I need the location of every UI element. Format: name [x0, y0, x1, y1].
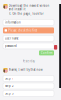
staticText: Yesterday: [22, 59, 34, 63]
button[interactable]: password: [3, 43, 54, 49]
button[interactable]: information: [3, 19, 54, 25]
button[interactable]: Step 1: [3, 75, 54, 81]
staticText: Confirm: [41, 51, 52, 55]
button[interactable]: Delete: [54, 45, 57, 50]
button[interactable]: user name: [3, 35, 54, 41]
staticText: information: [5, 21, 21, 24]
staticText: it. On the page, look for: [8, 12, 43, 15]
staticText: Thanks, I will try that now: [8, 68, 42, 71]
button[interactable]: Step 3: [3, 90, 54, 96]
staticText: Step 3: [5, 92, 14, 95]
staticText: Step 2: [5, 84, 14, 88]
staticText: password: [5, 44, 17, 48]
staticText: Download the newest version and install …: [8, 4, 49, 11]
button[interactable]: Confirm: [39, 50, 54, 55]
button[interactable]: Step 2: [3, 83, 54, 89]
staticText: Step 1: [5, 77, 14, 80]
staticText: Please check this first: [8, 29, 37, 32]
staticText: user name: [5, 37, 19, 40]
